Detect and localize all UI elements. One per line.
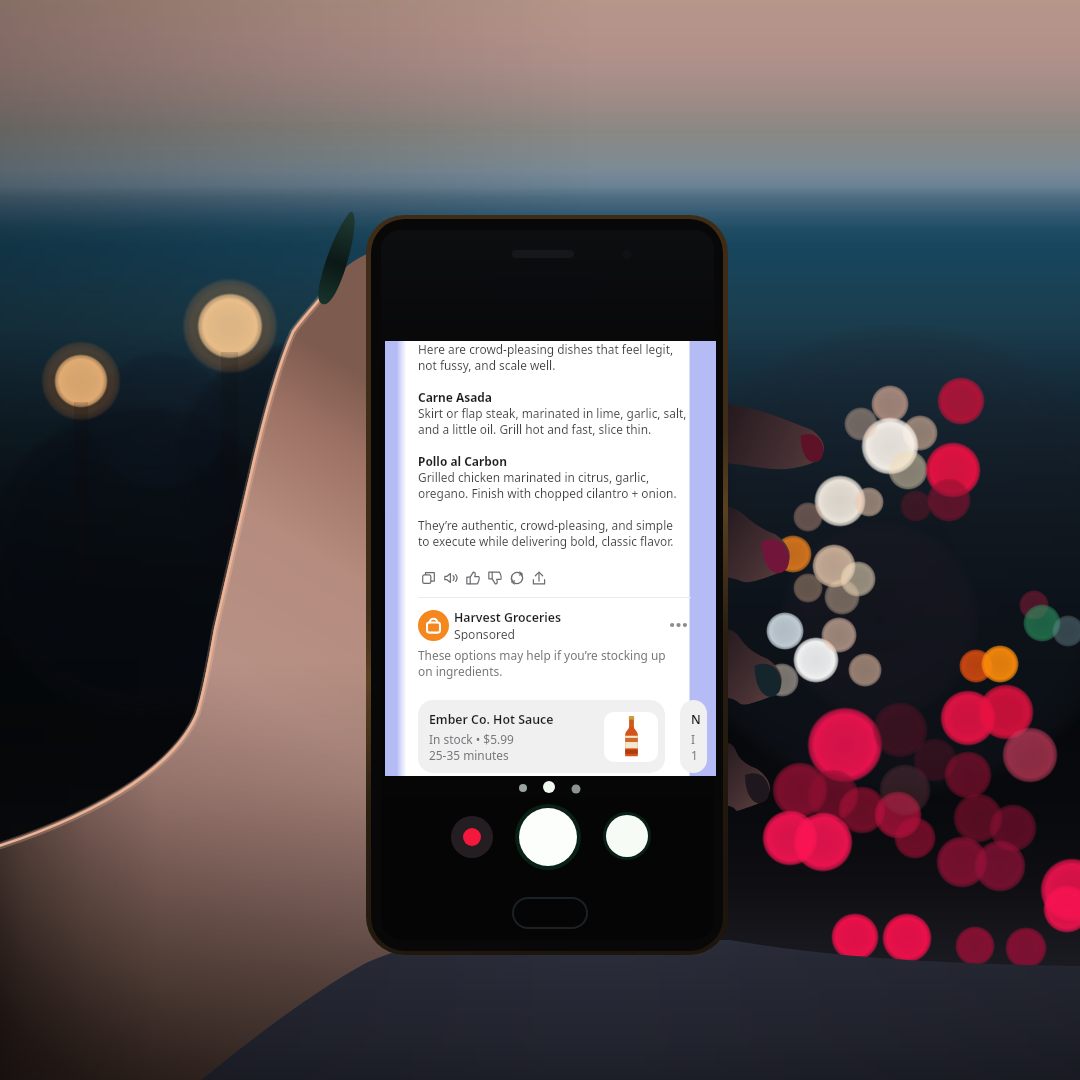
staticText: Sponsored [454, 626, 515, 641]
button[interactable]: Read aloud [440, 566, 462, 590]
staticText: These options may help if you’re stockin… [418, 647, 673, 679]
staticText: Here are crowd-pleasing dishes that feel… [418, 341, 687, 373]
staticText: Ember Co. Hot Sauce [429, 711, 554, 728]
staticText: Grilled chicken marinated in citrus, gar… [418, 469, 687, 501]
button[interactable]: Copy [418, 566, 440, 590]
staticText: 12-20 minutes [691, 747, 700, 763]
button[interactable]: Regenerate [506, 566, 528, 590]
button[interactable]: Nori Snack Pack [680, 700, 707, 773]
button[interactable]: Bad response [484, 566, 506, 590]
staticText: Carne Asada [418, 389, 492, 405]
staticText: Skirt or flap steak, marinated in lime, … [418, 405, 687, 437]
staticText: Pollo al Carbon [418, 453, 507, 469]
staticText: They’re authentic, crowd-pleasing, and s… [418, 517, 687, 549]
staticText: In stock • $4.49 [691, 731, 700, 747]
button[interactable]: Ember Co. Hot Sauce [418, 700, 665, 773]
staticText: 25-35 minutes [429, 747, 509, 763]
button[interactable]: More options [665, 613, 691, 637]
button[interactable]: Share [528, 566, 550, 590]
staticText: Nori Snack Pack [691, 711, 700, 728]
staticText: In stock • $5.99 [429, 731, 514, 747]
button[interactable]: Good response [462, 566, 484, 590]
staticText: Harvest Groceries [454, 609, 562, 626]
